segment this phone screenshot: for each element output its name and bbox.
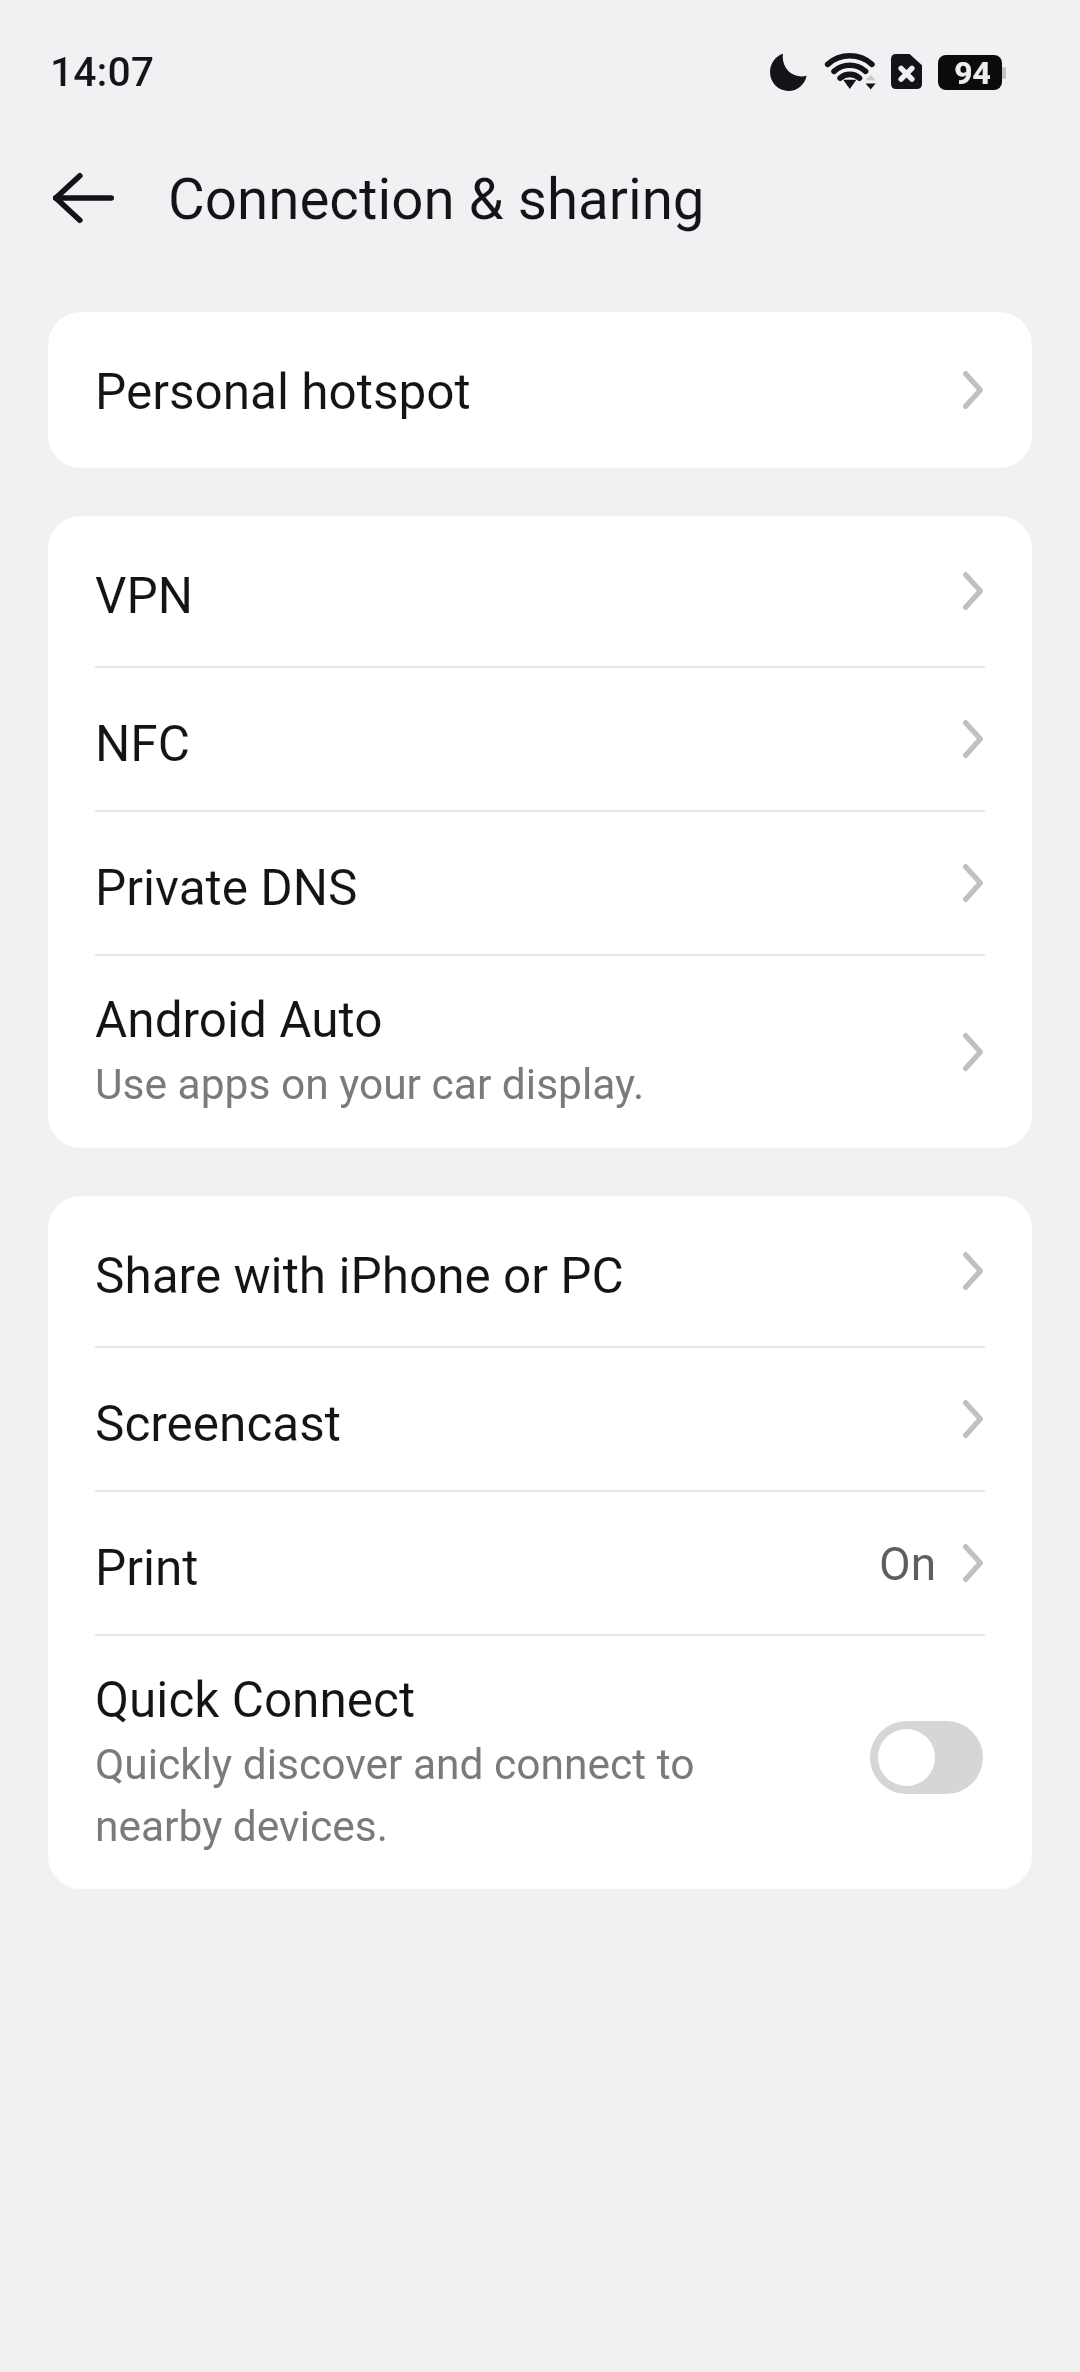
staticText: On bbox=[879, 1537, 937, 1591]
staticText: Private DNS bbox=[95, 859, 358, 917]
staticText: Quickly discover and connect to nearby d… bbox=[95, 1740, 725, 1851]
button[interactable]: Personal hotspot bbox=[48, 312, 1032, 468]
staticText: Print bbox=[95, 1539, 199, 1597]
staticText: 94 bbox=[954, 55, 991, 89]
button[interactable]: NFC bbox=[48, 668, 1032, 810]
button[interactable]: Quick Connect bbox=[48, 1636, 1032, 1889]
staticText: Quick Connect bbox=[95, 1671, 416, 1729]
button[interactable]: Screencast bbox=[48, 1348, 1032, 1490]
staticText: VPN bbox=[95, 567, 194, 625]
button[interactable]: Private DNS bbox=[48, 812, 1032, 954]
button[interactable]: Share with iPhone or PC bbox=[48, 1196, 1032, 1346]
button[interactable]: VPN bbox=[48, 516, 1032, 666]
button[interactable]: Print bbox=[48, 1492, 1032, 1634]
staticText: Share with iPhone or PC bbox=[95, 1247, 624, 1305]
button[interactable]: Back bbox=[29, 144, 137, 252]
staticText: NFC bbox=[95, 715, 190, 773]
staticText: Android Auto bbox=[95, 991, 383, 1049]
staticText: 14:07 bbox=[50, 48, 155, 96]
button[interactable]: Quick Connect toggle bbox=[870, 1721, 983, 1794]
staticText: Screencast bbox=[95, 1395, 342, 1453]
staticText: Use apps on your car display. bbox=[95, 1060, 645, 1110]
staticText: Connection & sharing bbox=[168, 167, 705, 233]
staticText: Personal hotspot bbox=[95, 363, 471, 421]
button[interactable]: Android Auto bbox=[48, 956, 1032, 1148]
